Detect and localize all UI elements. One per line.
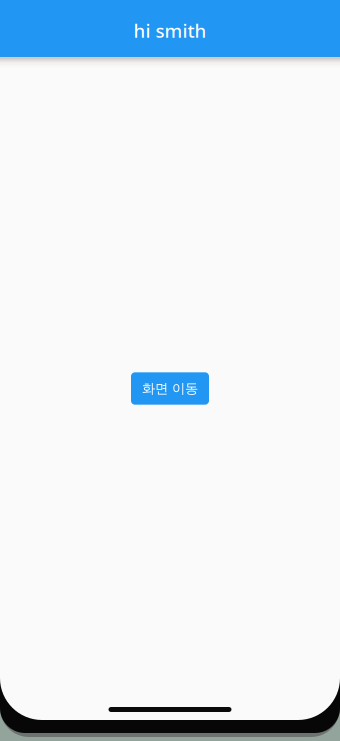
staticText: 화면 이동 — [142, 380, 198, 397]
staticText: hi smith — [133, 18, 206, 43]
button[interactable]: 화면 이동 — [131, 372, 209, 405]
